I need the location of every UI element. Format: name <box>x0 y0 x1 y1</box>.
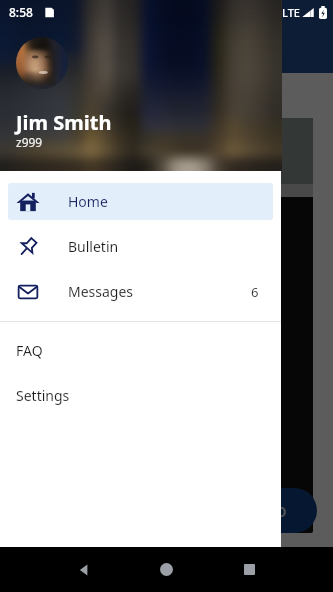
staticText: 6 <box>251 283 259 301</box>
button[interactable]: Go to <box>210 488 317 533</box>
staticText: Settings <box>16 386 70 405</box>
staticText: LTE <box>282 5 300 20</box>
staticText: Home <box>68 192 108 211</box>
staticText: FAQ <box>16 341 43 360</box>
button[interactable]: Settings <box>0 373 281 418</box>
button[interactable]: Home <box>8 183 273 220</box>
button[interactable] <box>20 118 313 533</box>
staticText: Jim Smith <box>16 109 112 136</box>
staticText: z999 <box>16 134 43 150</box>
button[interactable]: Back <box>77 563 91 577</box>
staticText: Messages <box>68 282 134 301</box>
staticText: GO TO <box>240 501 287 521</box>
button[interactable]: Bulletin <box>8 228 273 265</box>
button[interactable]: FAQ <box>0 328 281 373</box>
button[interactable]: Home <box>160 563 173 576</box>
staticText: 8:58 <box>9 4 33 20</box>
staticText: Bulletin <box>68 237 119 256</box>
button[interactable]: Messages <box>8 273 273 310</box>
button[interactable]: Recents <box>244 564 255 575</box>
